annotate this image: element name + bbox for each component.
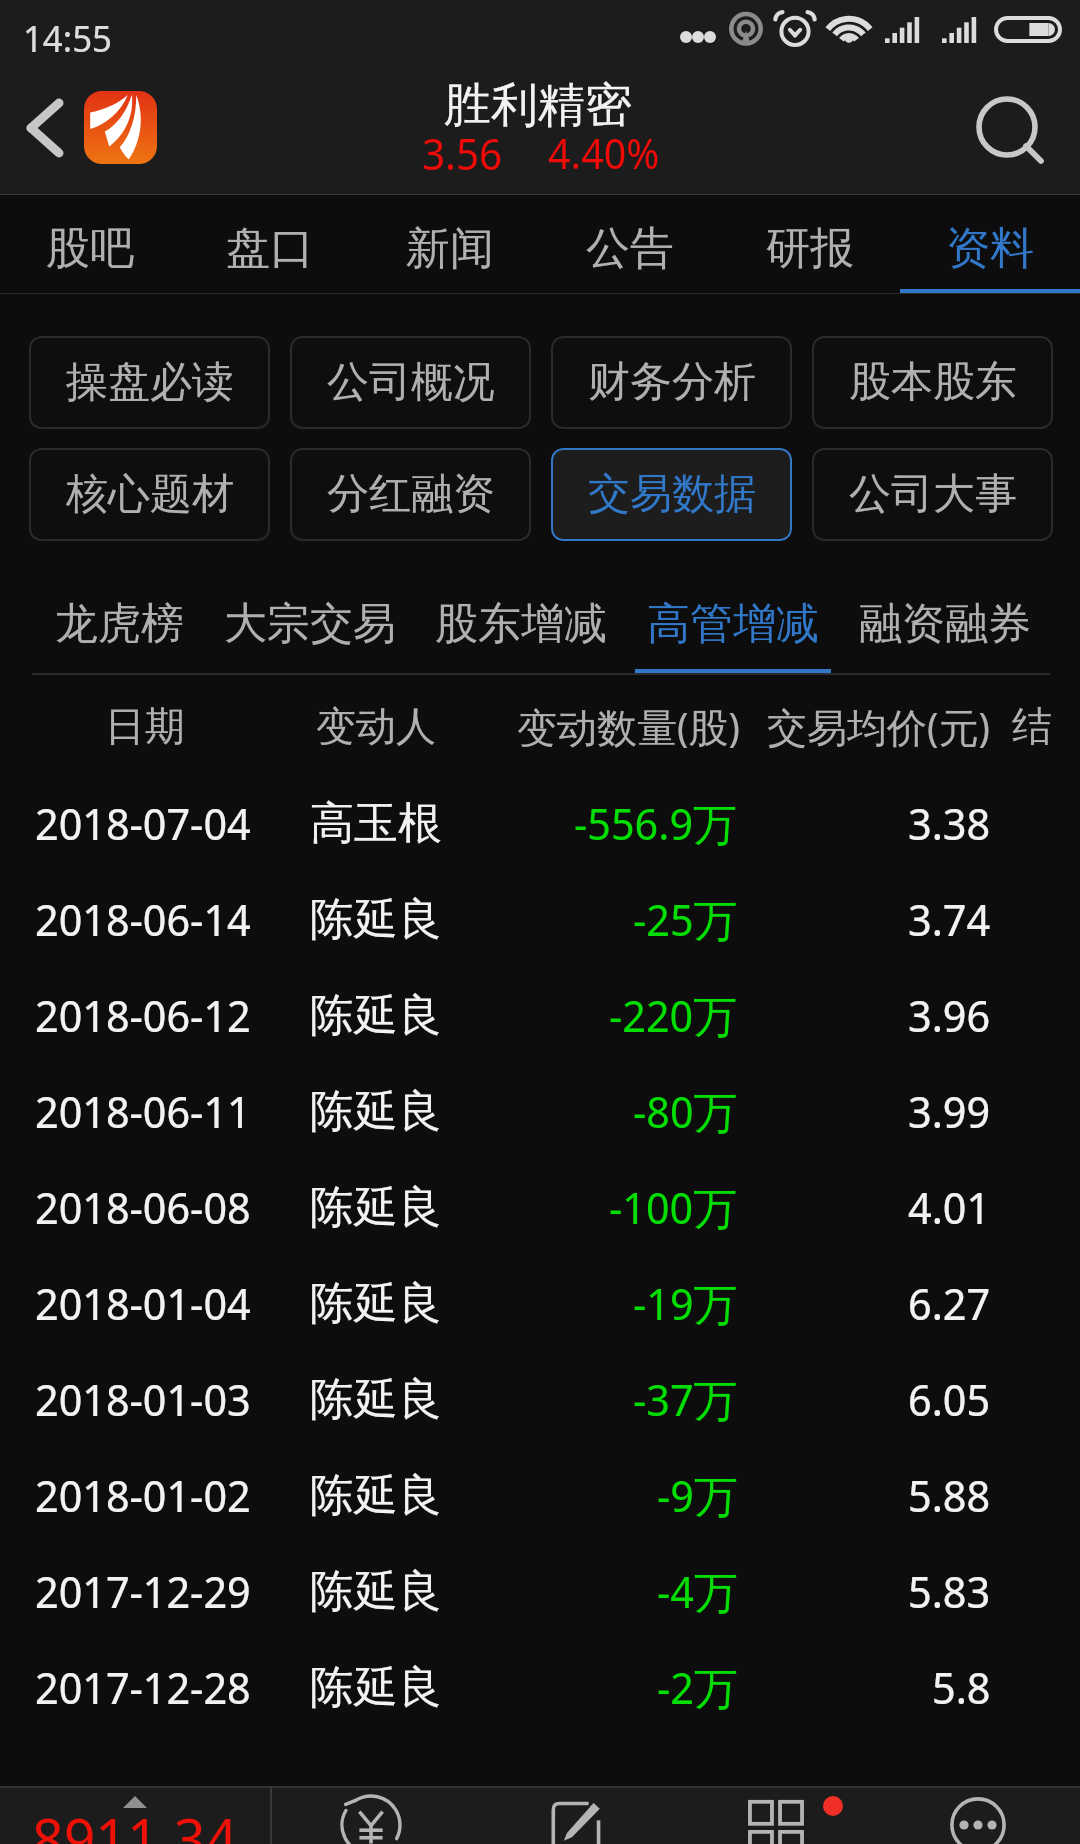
button[interactable]: Write	[475, 1786, 675, 1844]
staticText: 日期	[105, 701, 185, 751]
staticText: 2018-06-08	[35, 1177, 251, 1237]
staticText: 陈延良	[310, 892, 442, 947]
button[interactable]: 股吧	[0, 195, 180, 294]
staticText: 变动人	[316, 701, 436, 751]
staticText: 4.01	[908, 1177, 991, 1237]
staticText: 高玉根	[310, 796, 442, 851]
button[interactable]: 2018-01-04	[0, 1255, 1080, 1351]
staticText: 14:55	[23, 12, 112, 62]
staticText: 2018-01-04	[35, 1273, 251, 1333]
staticText: 大宗交易	[224, 597, 396, 651]
button[interactable]: 操盘必读	[29, 336, 270, 429]
button[interactable]: App logo	[84, 91, 157, 164]
button[interactable]: 资料	[900, 195, 1080, 294]
staticText: 2018-01-03	[35, 1369, 251, 1429]
button[interactable]: Grid	[676, 1786, 876, 1844]
button[interactable]: 2018-01-03	[0, 1351, 1080, 1447]
staticText: 3.96	[908, 985, 991, 1045]
button[interactable]: 高管增减	[635, 572, 831, 675]
staticText: 2018-06-14	[35, 889, 251, 949]
staticText: -25万	[633, 889, 738, 949]
button[interactable]: 核心题材	[29, 448, 270, 541]
button[interactable]: Search	[950, 70, 1080, 195]
staticText: 财务分析	[588, 356, 756, 409]
staticText: 交易均价(元)	[767, 699, 990, 754]
staticText: -80万	[633, 1081, 738, 1141]
staticText: 3.38	[908, 793, 991, 853]
staticText: 陈延良	[310, 1372, 442, 1427]
staticText: 操盘必读	[66, 356, 234, 409]
staticText: 研报	[766, 221, 854, 276]
staticText: 2018-06-12	[35, 985, 251, 1045]
staticText: 公司概况	[327, 356, 495, 409]
staticText: -9万	[657, 1465, 738, 1525]
button[interactable]: 8911.34	[0, 1786, 270, 1844]
button[interactable]: 研报	[720, 195, 900, 294]
staticText: -2万	[657, 1657, 738, 1717]
staticText: 新闻	[406, 221, 494, 276]
button[interactable]: 交易数据	[551, 448, 792, 541]
button[interactable]: 股本股东	[812, 336, 1053, 429]
button[interactable]: 2018-06-08	[0, 1159, 1080, 1255]
staticText: 公司大事	[849, 468, 1017, 521]
staticText: -556.9万	[574, 793, 738, 853]
staticText: 3.99	[908, 1081, 991, 1141]
button[interactable]: 2017-12-28	[0, 1639, 1080, 1735]
staticText: 2017-12-28	[35, 1657, 251, 1717]
button[interactable]: 公司大事	[812, 448, 1053, 541]
button[interactable]: 融资融券	[847, 572, 1043, 675]
staticText: 2018-07-04	[35, 793, 251, 853]
staticText: 胜利精密	[444, 76, 632, 135]
staticText: 2017-12-29	[35, 1561, 251, 1621]
button[interactable]: 公司概况	[290, 336, 531, 429]
staticText: 股吧	[46, 221, 134, 276]
staticText: 6.05	[908, 1369, 991, 1429]
staticText: -4万	[657, 1561, 738, 1621]
button[interactable]: Trade	[271, 1786, 471, 1844]
button[interactable]: 2018-06-12	[0, 967, 1080, 1063]
staticText: 5.8	[932, 1657, 991, 1717]
staticText: 陈延良	[310, 1564, 442, 1619]
staticText: 交易数据	[588, 468, 756, 521]
staticText: 陈延良	[310, 1084, 442, 1139]
staticText: -37万	[633, 1369, 738, 1429]
staticText: 2018-01-02	[35, 1465, 251, 1525]
staticText: 变动数量(股)	[517, 699, 740, 754]
staticText: 4.40%	[548, 124, 660, 181]
button[interactable]: Back	[0, 70, 90, 195]
staticText: 盘口	[226, 221, 314, 276]
staticText: -19万	[633, 1273, 738, 1333]
button[interactable]: More	[878, 1786, 1078, 1844]
staticText: 股本股东	[849, 356, 1017, 409]
staticText: 陈延良	[310, 1660, 442, 1715]
staticText: 2018-06-11	[35, 1081, 251, 1141]
button[interactable]: 2018-07-04	[0, 775, 1080, 871]
staticText: 陈延良	[310, 1276, 442, 1331]
button[interactable]: 龙虎榜	[42, 572, 197, 675]
staticText: 融资融券	[859, 597, 1031, 651]
staticText: 8911.34	[32, 1798, 238, 1844]
button[interactable]: 财务分析	[551, 336, 792, 429]
staticText: 3.74	[908, 889, 991, 949]
button[interactable]: 2018-06-14	[0, 871, 1080, 967]
staticText: 高管增减	[647, 597, 819, 651]
staticText: 陈延良	[310, 1180, 442, 1235]
staticText: 龙虎榜	[55, 597, 184, 651]
staticText: 核心题材	[66, 468, 234, 521]
button[interactable]: 分红融资	[290, 448, 531, 541]
staticText: 结	[1012, 701, 1052, 751]
button[interactable]: 盘口	[180, 195, 360, 294]
button[interactable]: 2018-01-02	[0, 1447, 1080, 1543]
staticText: 5.83	[908, 1561, 991, 1621]
button[interactable]: 大宗交易	[212, 572, 408, 675]
button[interactable]: 2018-06-11	[0, 1063, 1080, 1159]
button[interactable]: 新闻	[360, 195, 540, 294]
staticText: -100万	[609, 1177, 738, 1237]
staticText: -220万	[609, 985, 738, 1045]
staticText: 3.56	[422, 124, 503, 183]
button[interactable]: 股东增减	[423, 572, 619, 675]
button[interactable]: 公告	[540, 195, 720, 294]
staticText: 陈延良	[310, 1468, 442, 1523]
button[interactable]: 2017-12-29	[0, 1543, 1080, 1639]
staticText: 股东增减	[435, 597, 607, 651]
